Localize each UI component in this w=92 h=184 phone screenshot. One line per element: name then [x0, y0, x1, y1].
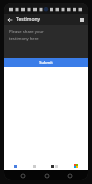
button[interactable]: Back [18, 171, 27, 180]
button[interactable]: Submit [4, 58, 88, 67]
staticText: Testimony [16, 16, 41, 23]
button[interactable]: Back [4, 14, 15, 25]
button[interactable]: More options [76, 14, 87, 25]
button[interactable]: Recents [65, 171, 74, 180]
staticText: testimony here [9, 36, 39, 42]
button[interactable]: App 4 [74, 164, 78, 168]
staticText: Submit [39, 60, 53, 65]
button[interactable]: Home [42, 171, 51, 180]
staticText: Please share your [9, 29, 44, 35]
